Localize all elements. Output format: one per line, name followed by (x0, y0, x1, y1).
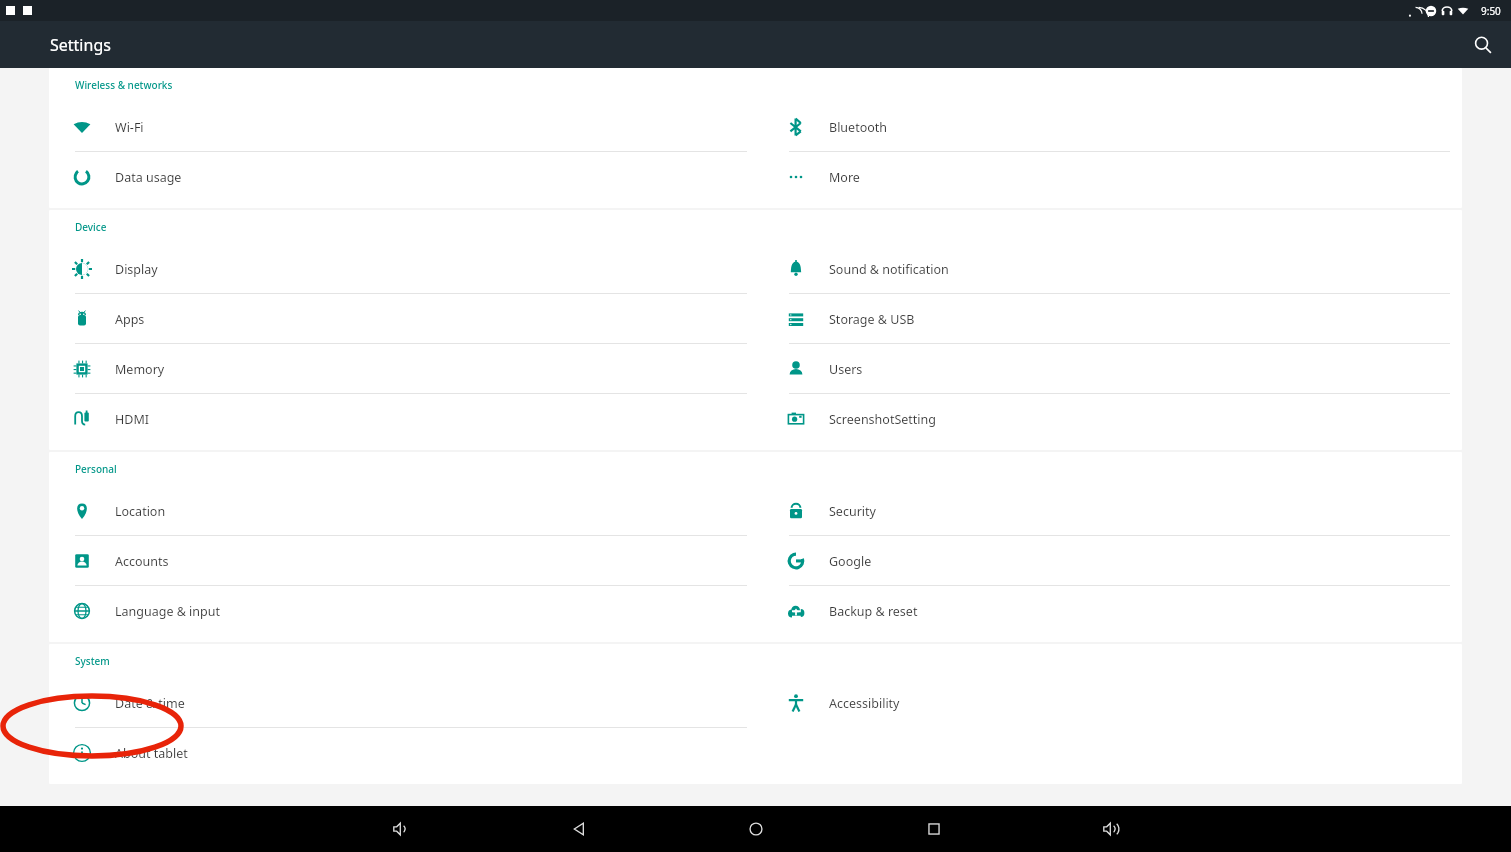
button[interactable]: Security (763, 486, 1450, 536)
button[interactable]: ScreenshotSetting (763, 394, 1450, 444)
staticText: HDMI (115, 411, 149, 428)
staticText: Personal (75, 462, 117, 476)
button[interactable]: Search (1463, 25, 1503, 65)
staticText: Accessibility (829, 695, 900, 712)
button[interactable]: Apps (49, 294, 747, 344)
button[interactable]: Recents (911, 806, 957, 852)
staticText: ScreenshotSetting (829, 411, 936, 428)
staticText: Data usage (115, 169, 182, 186)
staticText: Apps (115, 311, 145, 328)
staticText: Users (829, 361, 863, 378)
button[interactable]: Sound & notification (763, 244, 1450, 294)
button[interactable]: HDMI (49, 394, 747, 444)
staticText: Location (115, 503, 166, 520)
staticText: Security (829, 503, 876, 520)
button[interactable]: Storage & USB (763, 294, 1450, 344)
staticText: About tablet (115, 745, 188, 762)
staticText: Sound & notification (829, 261, 949, 278)
staticText: System (75, 654, 110, 668)
button[interactable]: Home (733, 806, 779, 852)
button[interactable]: Bluetooth (763, 102, 1450, 152)
button[interactable]: Display (49, 244, 747, 294)
staticText: More (829, 169, 860, 186)
staticText: Date & time (115, 695, 185, 712)
staticText: Bluetooth (829, 119, 888, 136)
button[interactable]: Accessibility (763, 678, 1450, 728)
staticText: Google (829, 553, 872, 570)
staticText: Storage & USB (829, 311, 915, 328)
staticText: Wireless & networks (75, 78, 173, 92)
staticText: Display (115, 261, 158, 278)
button[interactable]: Location (49, 486, 747, 536)
staticText: Device (75, 220, 107, 234)
button[interactable]: Accounts (49, 536, 747, 586)
staticText: Language & input (115, 603, 220, 620)
staticText: 9:50 (1481, 4, 1501, 18)
button[interactable]: About tablet (49, 728, 747, 778)
button[interactable]: Data usage (49, 152, 747, 202)
button[interactable]: Wi-Fi (49, 102, 747, 152)
button[interactable]: Back (556, 806, 602, 852)
button[interactable]: Volume down (378, 806, 424, 852)
button[interactable]: More (763, 152, 1450, 202)
button[interactable]: Volume up (1088, 806, 1134, 852)
staticText: Memory (115, 361, 165, 378)
staticText: Backup & reset (829, 603, 918, 620)
button[interactable]: Backup & reset (763, 586, 1450, 636)
button[interactable]: Date & time (49, 678, 747, 728)
button[interactable]: Language & input (49, 586, 747, 636)
button[interactable]: Memory (49, 344, 747, 394)
button[interactable]: Users (763, 344, 1450, 394)
staticText: Wi-Fi (115, 119, 144, 136)
staticText: Accounts (115, 553, 169, 570)
staticText: Settings (50, 34, 111, 56)
button[interactable]: Google (763, 536, 1450, 586)
